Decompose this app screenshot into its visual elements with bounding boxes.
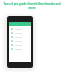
button[interactable] [9, 39, 31, 43]
staticText: Tons of pro-grade Growth Benchmarks and … [0, 2, 64, 9]
button[interactable] [9, 27, 31, 31]
button[interactable] [9, 43, 31, 47]
button[interactable] [9, 35, 31, 39]
button[interactable] [9, 47, 31, 51]
button[interactable] [9, 31, 31, 35]
